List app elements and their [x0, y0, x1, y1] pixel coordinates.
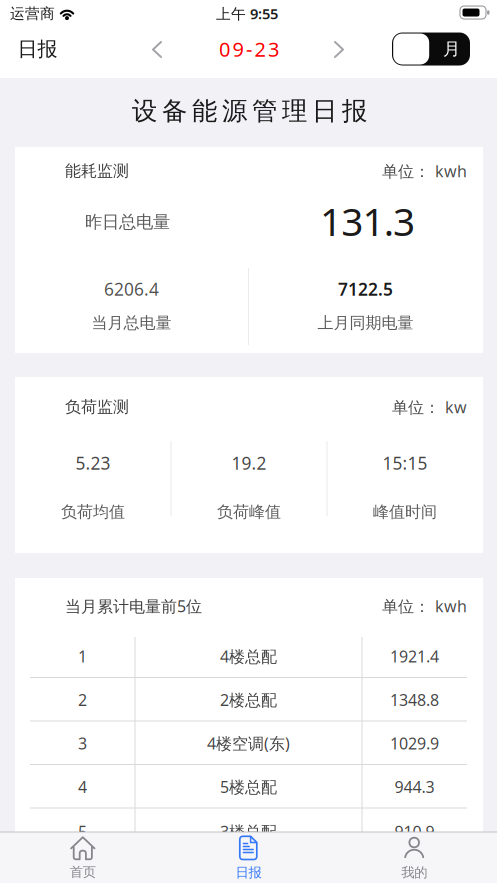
- staticText: 19.2: [231, 451, 266, 474]
- staticText: 1: [78, 646, 87, 667]
- staticText: 5楼总配: [220, 776, 277, 797]
- staticText: 131.3: [320, 195, 415, 247]
- staticText: 3楼总配: [220, 821, 277, 842]
- staticText: 2: [78, 689, 87, 710]
- staticText: 负荷峰值: [217, 502, 281, 522]
- staticText: 负荷监测: [65, 397, 129, 417]
- staticText: 3: [78, 733, 87, 754]
- staticText: 单位： kwh: [382, 595, 467, 617]
- staticText: 月: [443, 38, 460, 60]
- staticText: 设备能源管理日报: [132, 95, 367, 126]
- staticText: 5.23: [75, 451, 110, 474]
- staticText: 当月累计电量前5位: [65, 595, 202, 617]
- staticText: 运营商: [10, 4, 55, 22]
- staticText: 5: [78, 821, 87, 842]
- button[interactable]: 前一天: [143, 32, 171, 67]
- staticText: 7122.5: [338, 277, 393, 300]
- staticText: 910.9: [394, 821, 434, 842]
- staticText: 负荷均值: [61, 502, 125, 522]
- staticText: 峰值时间: [373, 502, 437, 522]
- staticText: 4: [78, 776, 87, 797]
- staticText: 日报: [17, 37, 57, 61]
- button[interactable]: 首页: [23, 833, 143, 883]
- staticText: 首页: [70, 864, 96, 880]
- staticText: 上月同期电量: [317, 313, 413, 333]
- staticText: 1348.8: [390, 689, 439, 710]
- staticText: 单位： kw: [392, 396, 467, 418]
- staticText: 2楼总配: [220, 689, 277, 710]
- button[interactable]: 我的: [354, 833, 474, 883]
- button[interactable]: 切换日/月: [392, 32, 470, 65]
- staticText: 昨日总电量: [85, 211, 170, 233]
- staticText: 当月总电量: [91, 313, 171, 333]
- staticText: 944.3: [394, 776, 434, 797]
- staticText: 1921.4: [390, 646, 439, 667]
- staticText: 1029.9: [390, 733, 439, 754]
- staticText: 6206.4: [104, 277, 159, 300]
- button[interactable]: 后一天: [325, 32, 353, 67]
- staticText: 上午 9:55: [216, 4, 278, 23]
- staticText: 4楼总配: [220, 646, 277, 667]
- staticText: 09-23: [219, 36, 279, 62]
- staticText: 单位： kwh: [382, 160, 467, 182]
- staticText: 我的: [401, 864, 427, 881]
- staticText: 4楼空调(东): [207, 733, 290, 754]
- staticText: 日报: [235, 864, 261, 881]
- staticText: 能耗监测: [65, 161, 129, 181]
- button[interactable]: 日报: [188, 833, 308, 883]
- staticText: 15:15: [382, 451, 427, 474]
